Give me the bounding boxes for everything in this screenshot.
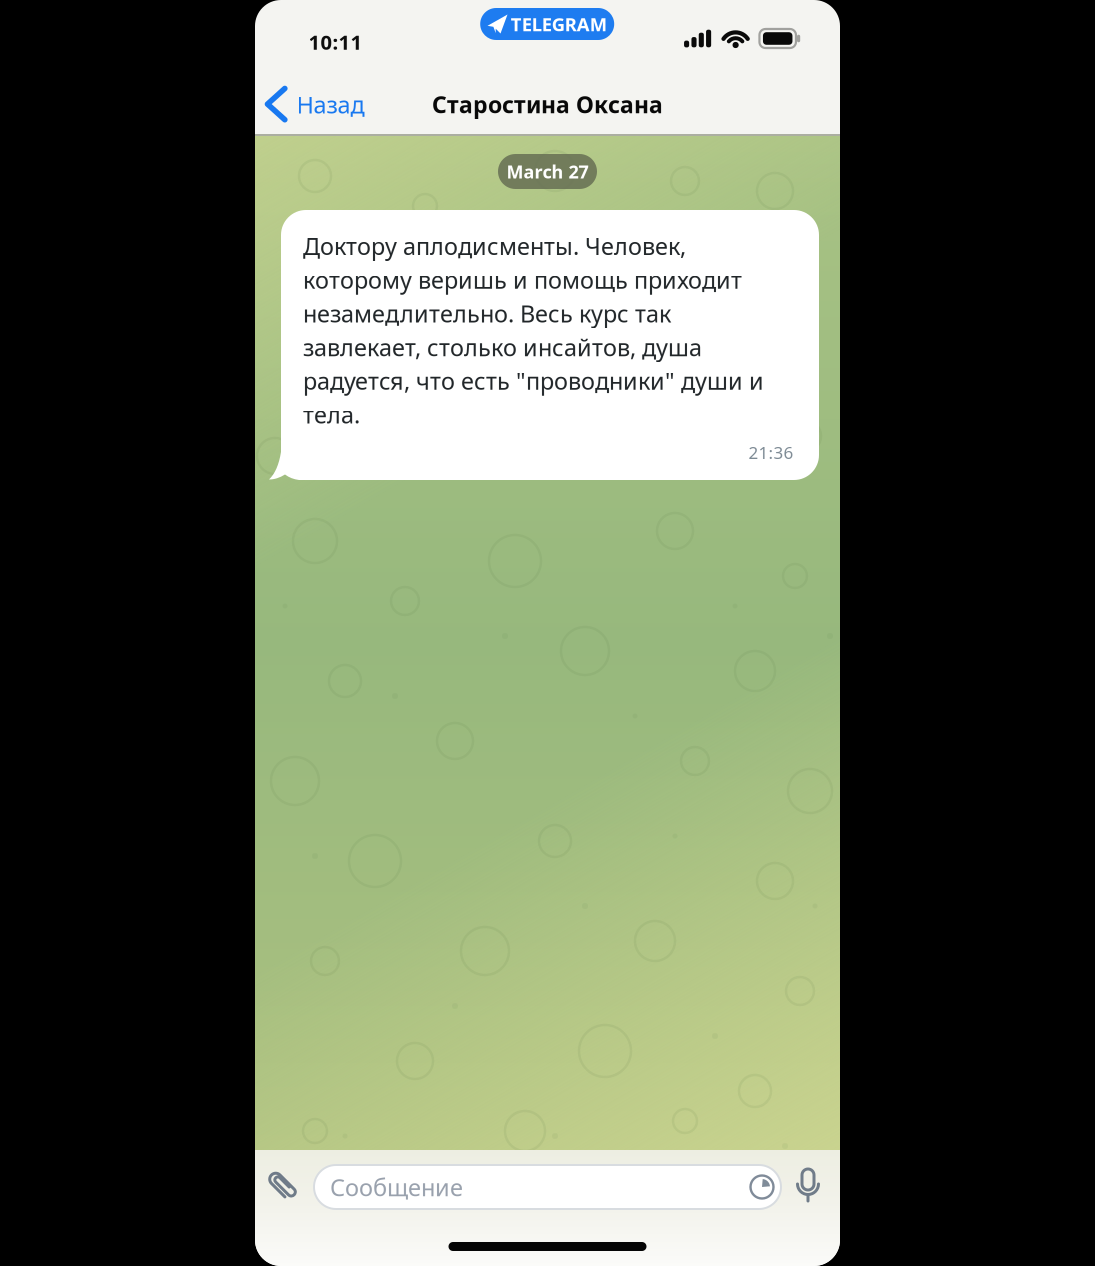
staticText: Назад: [296, 89, 364, 120]
staticText: Сообщение: [330, 1171, 463, 1203]
staticText: которому веришь и помощь приходит: [303, 264, 742, 296]
staticText: 21:36: [748, 441, 793, 464]
staticText: Старостина Оксана: [432, 89, 663, 120]
staticText: 10:11: [309, 28, 363, 56]
button[interactable]: Record voice message: [793, 1167, 823, 1207]
staticText: незамедлительно. Весь курс так: [303, 297, 671, 329]
staticText: Доктору аплодисменты. Человек,: [303, 230, 686, 262]
button[interactable]: Назад: [267, 88, 364, 120]
staticText: тела.: [303, 398, 360, 430]
button[interactable]: Telegram: [480, 8, 614, 40]
staticText: радуется, что есть "проводники" души и: [303, 365, 764, 397]
staticText: TELEGRAM: [511, 11, 607, 37]
staticText: завлекает, столько инсайтов, душа: [303, 331, 702, 363]
staticText: March 27: [506, 159, 588, 184]
button[interactable]: Attach: [263, 1165, 303, 1209]
button[interactable]: Сообщение: [314, 1165, 781, 1209]
button[interactable]: Set self-destruct timer: [749, 1174, 775, 1200]
